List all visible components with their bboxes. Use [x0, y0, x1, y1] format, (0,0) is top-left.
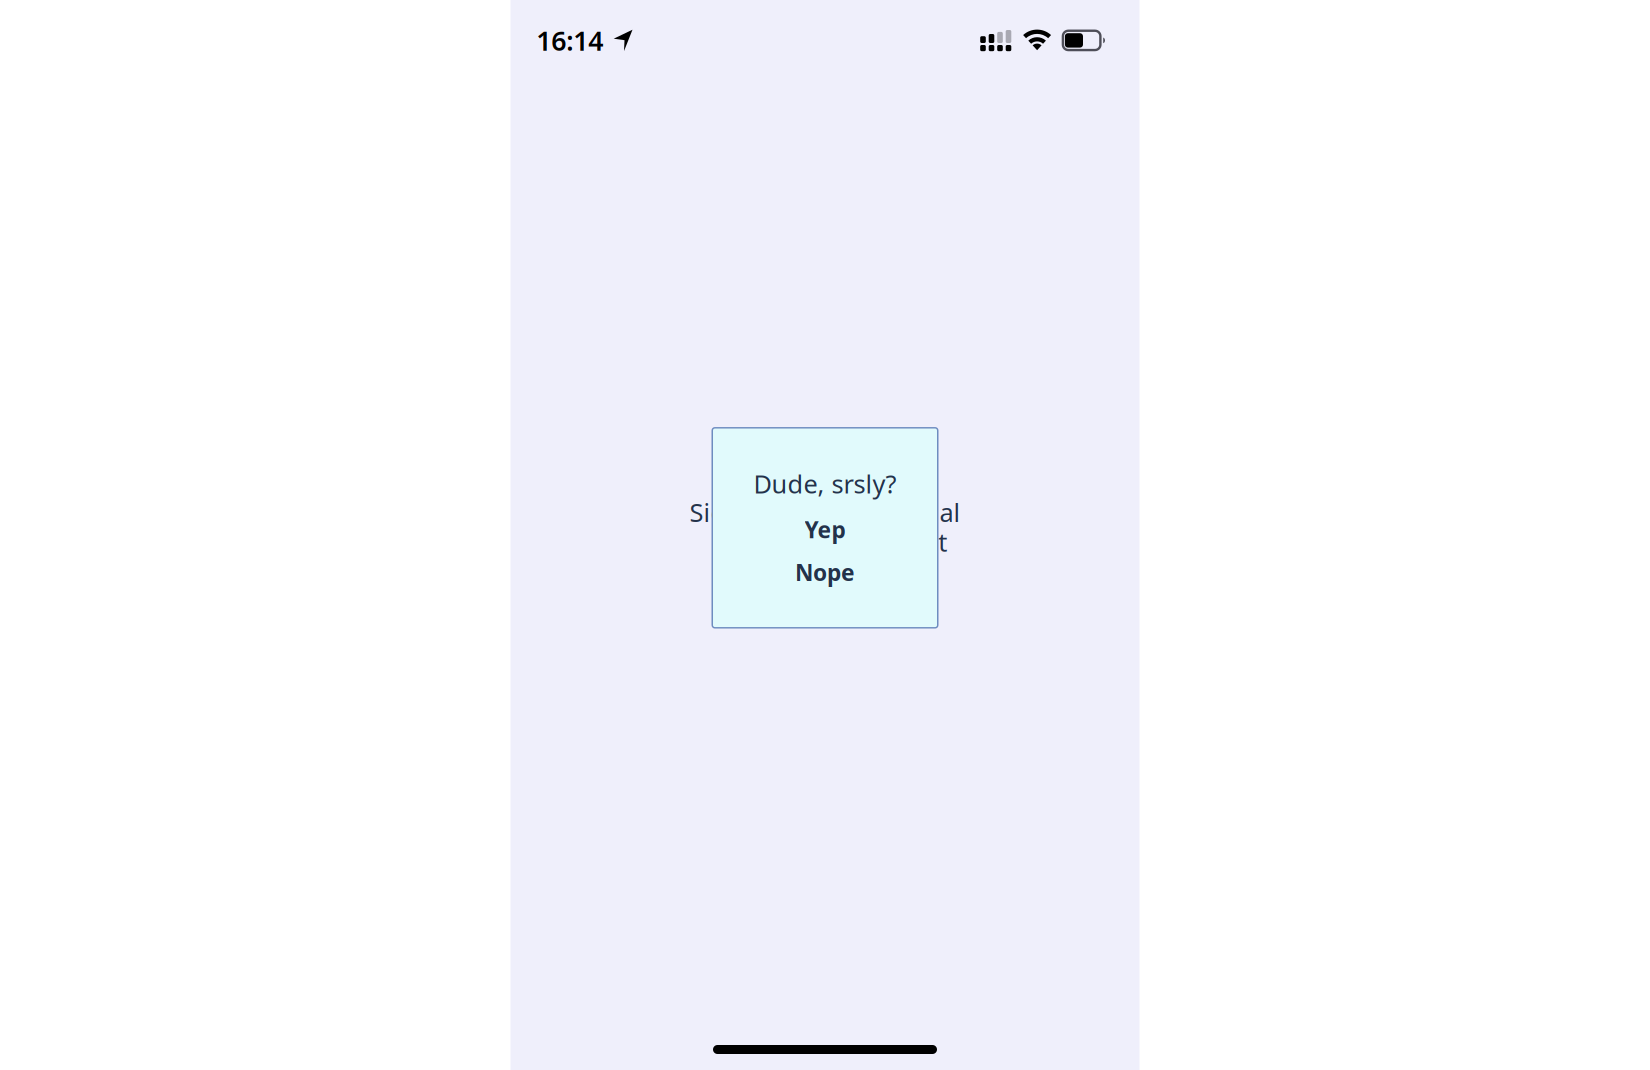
- staticText: 16:14: [536, 23, 603, 58]
- button[interactable]: Yep: [804, 500, 845, 544]
- staticText: Yep: [804, 514, 845, 544]
- button[interactable]: Nope: [795, 544, 855, 587]
- staticText: Signing out is optional: [689, 495, 960, 529]
- staticText: Nope: [795, 557, 855, 587]
- staticText: but it is not instant: [720, 525, 947, 559]
- staticText: Dude, srsly?: [753, 467, 896, 500]
